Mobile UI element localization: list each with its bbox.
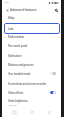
button[interactable]: Video effects — [2, 88, 61, 97]
button[interactable]: Toggle — [50, 72, 56, 75]
button[interactable]: One-handed mode — [2, 69, 61, 78]
staticText: Advanced features — [10, 8, 37, 12]
staticText: Bixby — [8, 16, 15, 20]
staticText: Normal — [8, 103, 17, 106]
button[interactable]: Side button — [2, 51, 61, 60]
staticText: Screenshots and screen recorder — [8, 82, 47, 86]
button[interactable]: Labs — [4, 23, 60, 34]
button[interactable]: Search — [53, 7, 59, 13]
staticText: Side button — [8, 54, 22, 58]
button[interactable]: Back — [44, 107, 54, 117]
button[interactable]: Multi window — [2, 32, 61, 41]
staticText: Flex mode panel — [8, 44, 28, 48]
button[interactable]: Back — [4, 7, 10, 13]
staticText: Video brightness — [8, 99, 28, 103]
staticText: 9:41 — [5, 1, 10, 4]
staticText: Video effects — [8, 91, 50, 95]
button[interactable]: Home — [27, 107, 37, 117]
staticText: Motions and gestures — [8, 63, 34, 67]
button[interactable]: Motions and gestures — [2, 60, 61, 69]
button[interactable]: Flex mode panel — [2, 41, 61, 50]
button[interactable]: Video brightness — [2, 98, 61, 107]
button[interactable]: Screenshots and screen recorder — [2, 79, 61, 88]
staticText: Multi window — [8, 35, 24, 39]
button[interactable]: Toggle — [50, 91, 56, 94]
button[interactable]: Recents — [9, 107, 19, 117]
staticText: Labs — [8, 27, 14, 31]
staticText: One-handed mode — [8, 72, 50, 76]
button[interactable]: Bixby — [2, 13, 61, 22]
